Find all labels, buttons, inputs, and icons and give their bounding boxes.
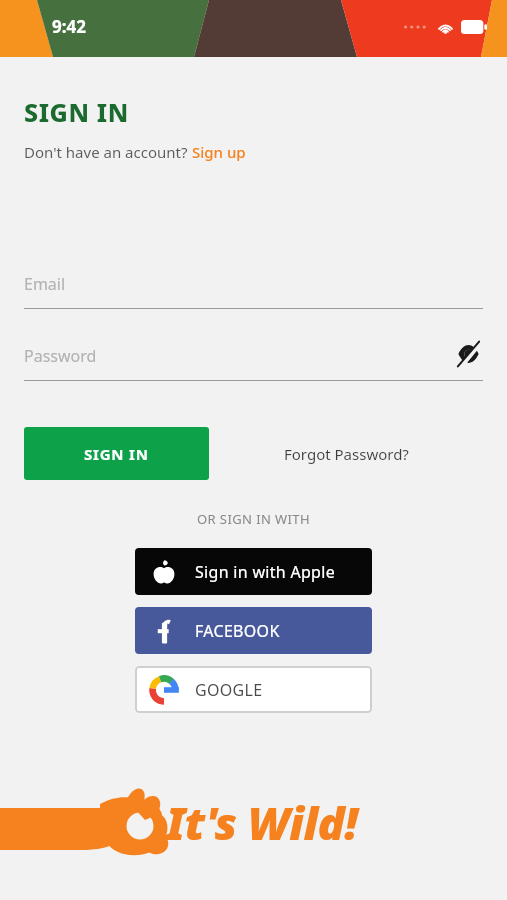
- button[interactable]: Sign in with Apple: [135, 548, 372, 595]
- button[interactable]: Forgot Password?: [210, 444, 483, 464]
- button[interactable]: Sign up: [192, 142, 246, 162]
- staticText: GOOGLE: [195, 679, 263, 701]
- staticText: SIGN IN: [84, 444, 149, 464]
- staticText: SIGN IN: [24, 95, 129, 129]
- button[interactable]: SIGN IN: [24, 427, 209, 480]
- button[interactable]: Password: [24, 339, 483, 381]
- button[interactable]: GOOGLE: [135, 666, 372, 713]
- staticText: Don't have an account?: [24, 142, 192, 162]
- staticText: It's Wild!: [166, 792, 358, 853]
- staticText: Sign in with Apple: [195, 561, 335, 583]
- staticText: Email: [24, 273, 66, 295]
- staticText: 9:42: [52, 15, 86, 38]
- staticText: Forgot Password?: [284, 444, 409, 464]
- staticText: Password: [24, 345, 97, 367]
- button[interactable]: FACEBOOK: [135, 607, 372, 654]
- staticText: Sign up: [192, 142, 246, 162]
- button[interactable]: Show password: [453, 339, 483, 369]
- staticText: FACEBOOK: [195, 620, 280, 642]
- staticText: OR SIGN IN WITH: [0, 510, 507, 528]
- button[interactable]: Email: [24, 267, 483, 309]
